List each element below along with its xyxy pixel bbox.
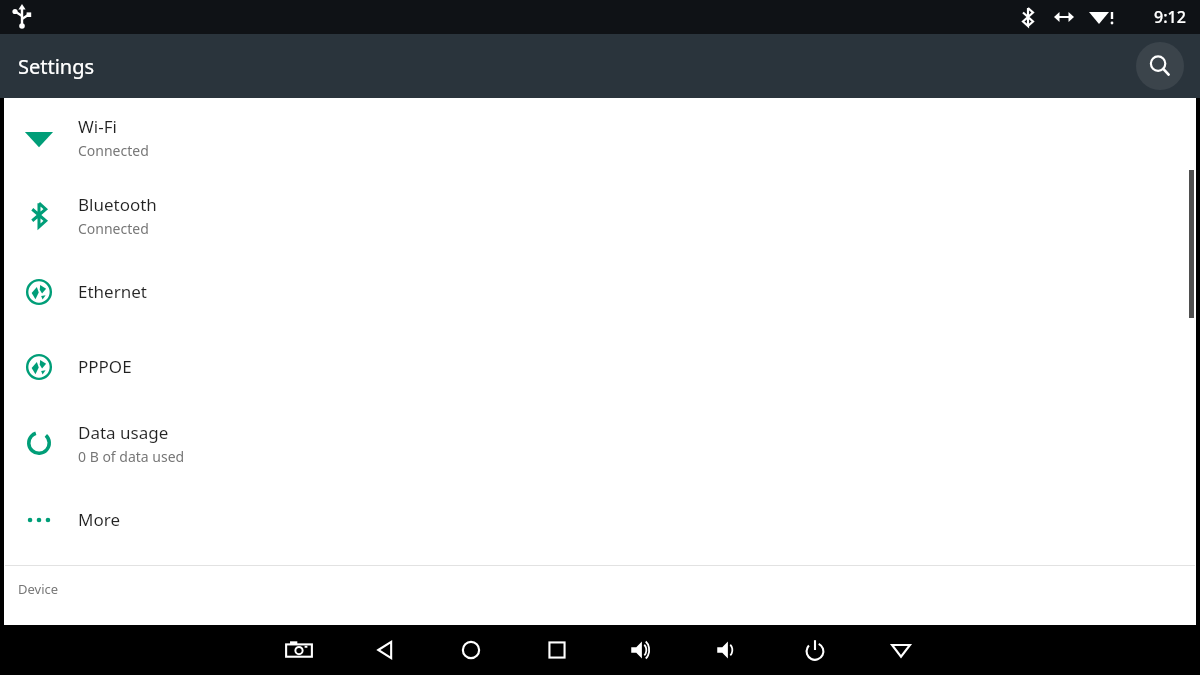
button[interactable]: Hide navigation bar (881, 630, 921, 670)
staticText: Wi-Fi (78, 115, 117, 138)
button[interactable]: Volume down (709, 630, 749, 670)
staticText: Settings (18, 53, 95, 80)
staticText: 0 B of data used (78, 447, 185, 466)
staticText: Bluetooth (78, 193, 157, 216)
button[interactable]: Ethernet (0, 254, 1200, 329)
staticText: Device (18, 580, 59, 598)
button[interactable]: Search (1136, 42, 1184, 90)
staticText: Connected (78, 141, 149, 160)
staticText: Connected (78, 219, 149, 238)
button[interactable]: Data usage (0, 404, 1200, 482)
staticText: More (78, 508, 120, 531)
button[interactable]: Screenshot (279, 630, 319, 670)
button[interactable]: Home (451, 630, 491, 670)
button[interactable]: Recents (537, 630, 577, 670)
button[interactable]: PPPOE (0, 329, 1200, 404)
button[interactable]: Volume up (623, 630, 663, 670)
button[interactable]: Back (365, 630, 405, 670)
staticText: 9:12 (1154, 6, 1186, 28)
staticText: PPPOE (78, 355, 132, 378)
button[interactable]: Power (795, 630, 835, 670)
button[interactable]: Bluetooth (0, 176, 1200, 254)
staticText: Ethernet (78, 280, 147, 303)
button[interactable]: Wi-Fi (0, 98, 1200, 176)
button[interactable]: More (0, 482, 1200, 557)
staticText: Data usage (78, 421, 169, 444)
